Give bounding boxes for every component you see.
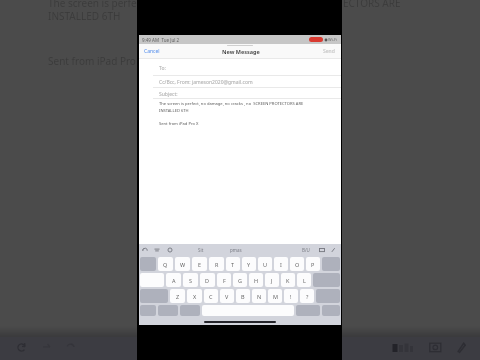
button[interactable]: X bbox=[187, 289, 202, 303]
staticText: INSTALLED 6TH bbox=[48, 9, 121, 23]
staticText: ? bbox=[306, 293, 309, 300]
staticText: H bbox=[254, 277, 259, 284]
staticText: O bbox=[295, 261, 300, 268]
staticText: Subject: bbox=[159, 91, 178, 98]
button[interactable]: A bbox=[166, 273, 181, 287]
button[interactable]: D bbox=[200, 273, 215, 287]
button[interactable]: Formatting bbox=[154, 247, 160, 253]
button[interactable]: Modifier key bbox=[140, 257, 156, 271]
button[interactable]: Cancel bbox=[144, 48, 160, 55]
button[interactable]: ! bbox=[284, 289, 298, 303]
staticText: C bbox=[209, 293, 213, 300]
staticText: I bbox=[280, 261, 282, 268]
staticText: K bbox=[286, 277, 290, 284]
staticText: G bbox=[238, 277, 243, 284]
staticText: X bbox=[193, 293, 197, 300]
button[interactable]: B bbox=[236, 289, 250, 303]
button[interactable]: Dictate bbox=[180, 305, 200, 316]
button[interactable]: Numbers bbox=[296, 305, 320, 316]
button[interactable]: Attachment bbox=[330, 247, 336, 253]
button[interactable]: S bbox=[183, 273, 198, 287]
button[interactable]: O bbox=[290, 257, 304, 271]
button[interactable]: V bbox=[220, 289, 234, 303]
button[interactable]: F bbox=[217, 273, 231, 287]
staticText: 9:49 AM Tue Jul 2 bbox=[142, 37, 180, 43]
staticText: INSTALLED 6TH bbox=[159, 108, 189, 114]
button[interactable]: R bbox=[209, 257, 224, 271]
button[interactable]: H bbox=[249, 273, 263, 287]
button[interactable]: Redo bbox=[167, 247, 173, 253]
staticText: The screen is perfect, no damage, no cra… bbox=[159, 101, 304, 107]
button[interactable]: Numbers bbox=[158, 305, 178, 316]
staticText: Send bbox=[323, 48, 335, 55]
button[interactable]: I bbox=[274, 257, 288, 271]
staticText: J bbox=[271, 277, 273, 284]
button[interactable]: Z bbox=[170, 289, 185, 303]
button[interactable]: Globe bbox=[140, 305, 156, 316]
staticText: Sit bbox=[198, 247, 204, 253]
staticText: Sent from iPad Pro X bbox=[159, 121, 199, 127]
staticText: Cancel bbox=[144, 48, 160, 55]
button[interactable]: E bbox=[192, 257, 207, 271]
button[interactable]: Undo bbox=[142, 247, 148, 253]
button[interactable]: Screenshot bbox=[427, 339, 444, 355]
staticText: D bbox=[205, 277, 210, 284]
staticText: S bbox=[189, 277, 193, 284]
staticText: R bbox=[215, 261, 219, 268]
staticText: B bbox=[241, 293, 245, 300]
staticText: Sent from iPad Pro X bbox=[48, 54, 145, 68]
staticText: Z bbox=[176, 293, 180, 300]
button[interactable]: T bbox=[226, 257, 240, 271]
staticText: B/U bbox=[302, 247, 310, 253]
button[interactable]: Modifier key bbox=[140, 273, 164, 287]
staticText: The screen is perfect, no damage, no cra… bbox=[48, 0, 401, 10]
staticText: W bbox=[180, 261, 186, 268]
staticText: T bbox=[231, 261, 235, 268]
button[interactable]: W bbox=[175, 257, 190, 271]
button[interactable]: C bbox=[204, 289, 218, 303]
staticText: New Message bbox=[222, 48, 260, 55]
staticText: E bbox=[198, 261, 202, 268]
button[interactable]: Modifier key bbox=[322, 257, 340, 271]
staticText: U bbox=[263, 261, 268, 268]
button[interactable]: G bbox=[233, 273, 247, 287]
button[interactable]: Send bbox=[323, 48, 335, 55]
staticText: V bbox=[225, 293, 229, 300]
staticText: L bbox=[303, 277, 306, 284]
staticText: Y bbox=[247, 261, 251, 268]
staticText: Q bbox=[163, 261, 168, 268]
button[interactable]: Q bbox=[158, 257, 173, 271]
button[interactable]: U bbox=[258, 257, 272, 271]
button[interactable]: Replay bbox=[13, 339, 30, 355]
staticText: Wi-Fi bbox=[328, 37, 338, 42]
staticText: P bbox=[311, 261, 315, 268]
button[interactable]: Y bbox=[242, 257, 256, 271]
button[interactable]: M bbox=[268, 289, 282, 303]
staticText: N bbox=[257, 293, 262, 300]
button[interactable]: L bbox=[297, 273, 311, 287]
button[interactable]: ? bbox=[300, 289, 314, 303]
button[interactable]: Statistics bbox=[392, 340, 416, 354]
staticText: Cc/Bcc, From: jameson2020@gmail.com bbox=[159, 79, 253, 86]
staticText: pmas bbox=[230, 247, 242, 253]
staticText: F bbox=[223, 277, 226, 284]
button[interactable]: Camera bbox=[319, 247, 325, 253]
staticText: ! bbox=[290, 293, 292, 300]
button[interactable]: Hide keyboard bbox=[322, 305, 340, 316]
button[interactable]: J bbox=[265, 273, 279, 287]
button[interactable]: P bbox=[306, 257, 320, 271]
button[interactable]: N bbox=[252, 289, 266, 303]
button[interactable]: K bbox=[281, 273, 295, 287]
staticText: To: bbox=[159, 65, 166, 72]
staticText: A bbox=[172, 277, 176, 284]
staticText: M bbox=[273, 293, 278, 300]
button[interactable]: Edit bbox=[452, 339, 469, 355]
